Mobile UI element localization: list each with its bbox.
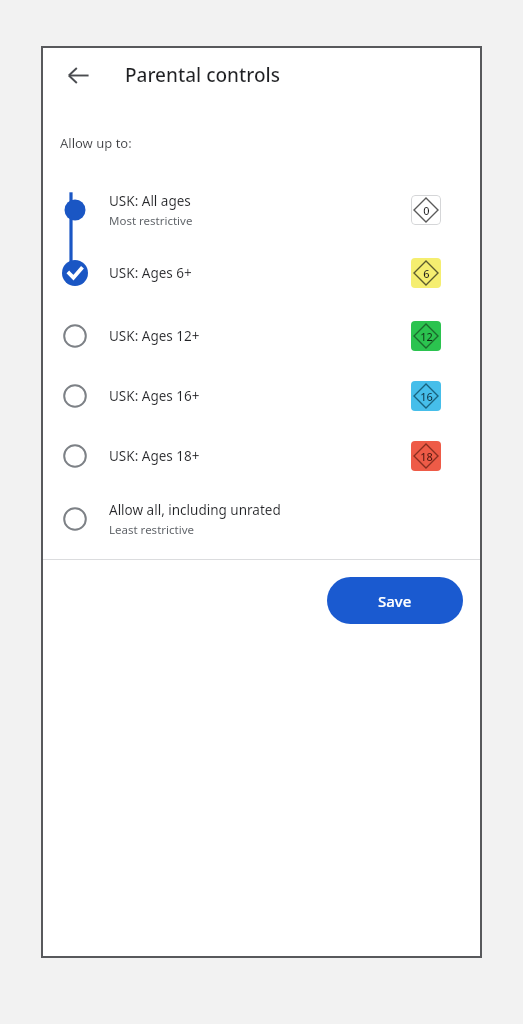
staticText: 16 [420,389,433,404]
staticText: Allow all, including unrated [109,501,281,519]
button[interactable]: USK: Ages 6+ [41,241,482,305]
staticText: 0 [423,203,430,218]
button[interactable]: USK: Ages 16+ [41,366,482,426]
button[interactable]: USK: All ages [41,179,482,241]
staticText: Parental controls [125,62,280,88]
button[interactable]: USK: Ages 18+ [41,426,482,486]
staticText: Most restrictive [109,213,193,229]
button[interactable]: Save [327,577,463,624]
staticText: USK: Ages 6+ [109,264,192,282]
staticText: USK: Ages 12+ [109,327,200,345]
staticText: 12 [420,329,433,344]
button[interactable]: Allow all, including unrated [41,486,482,552]
staticText: Least restrictive [109,522,194,538]
staticText: Save [378,591,412,611]
button[interactable]: USK: Ages 12+ [41,305,482,366]
staticText: 6 [423,266,430,281]
button[interactable]: Back [58,55,98,95]
staticText: USK: All ages [109,192,191,210]
staticText: 18 [420,449,433,464]
staticText: USK: Ages 18+ [109,447,200,465]
staticText: USK: Ages 16+ [109,387,200,405]
staticText: Allow up to: [60,134,132,152]
